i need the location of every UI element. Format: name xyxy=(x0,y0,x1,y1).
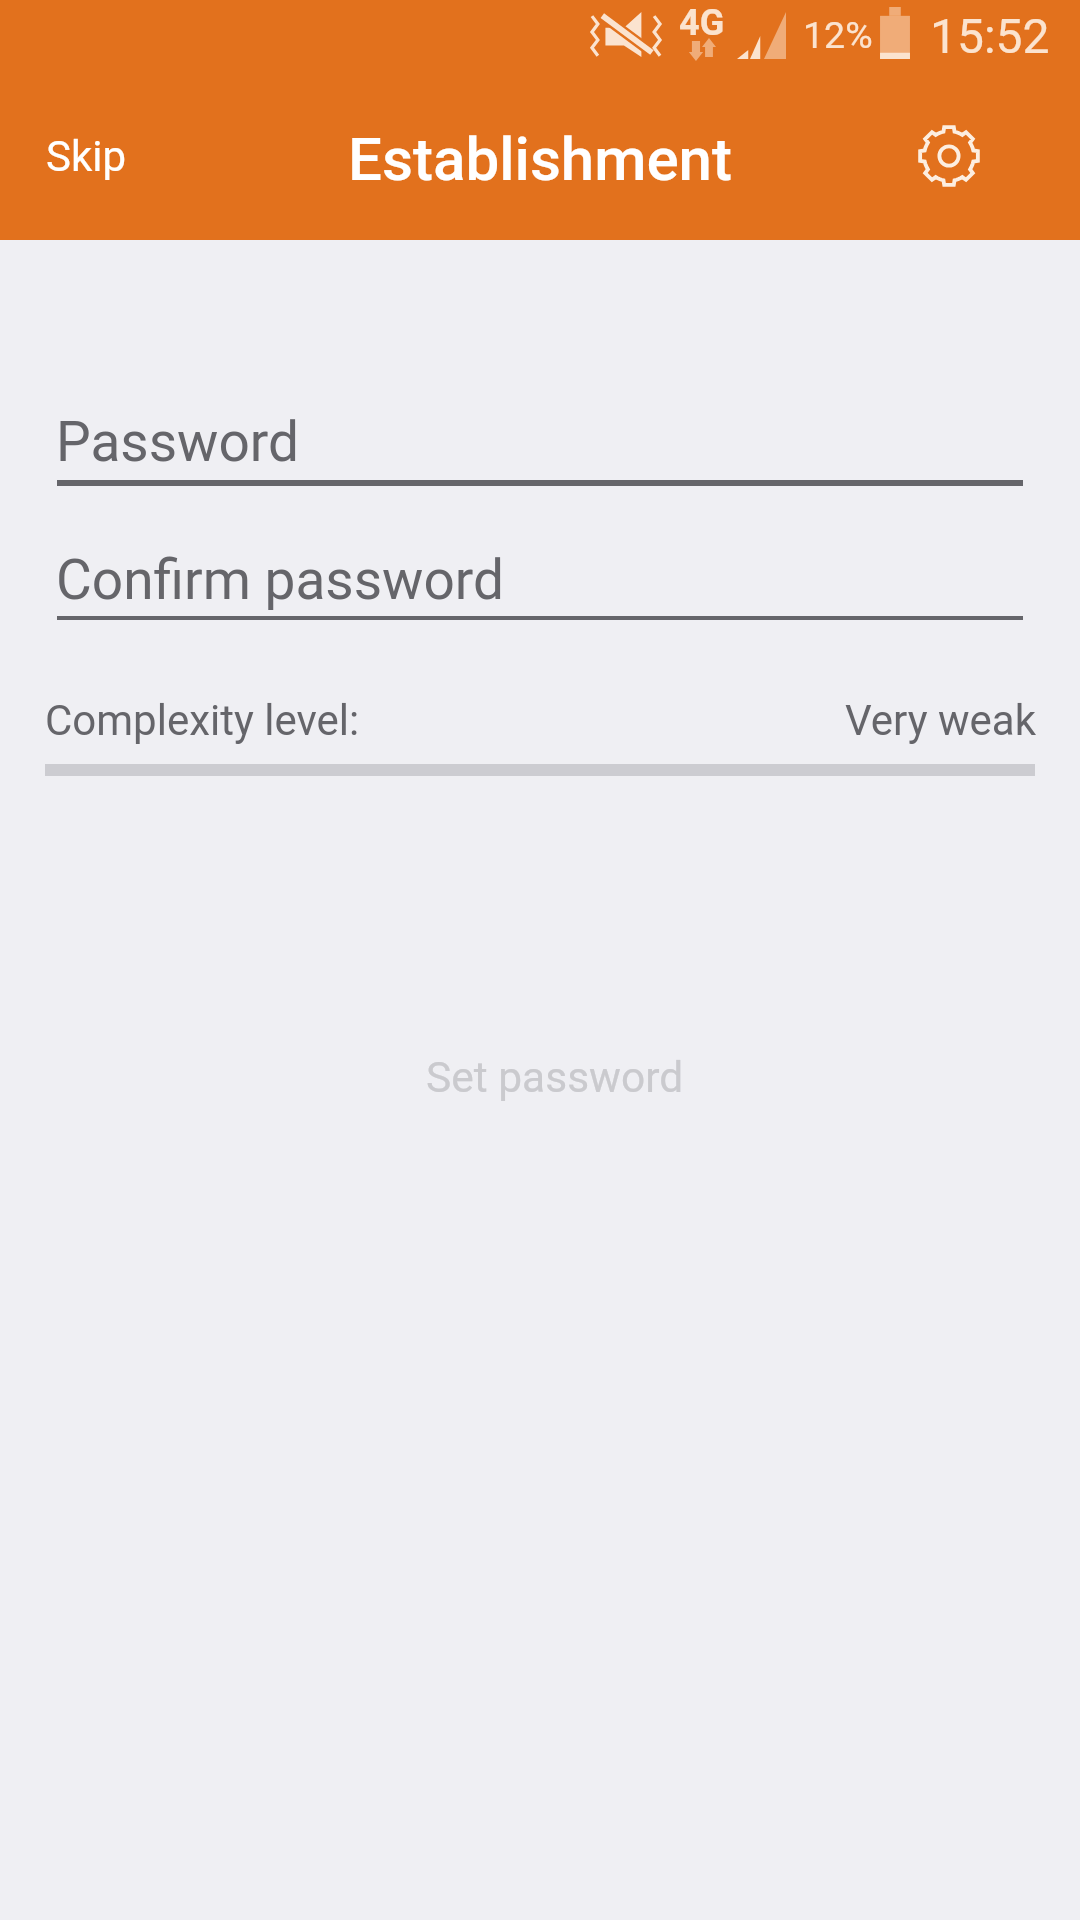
staticText: 15:52 xyxy=(930,8,1050,64)
button[interactable]: Confirm password xyxy=(57,538,1023,620)
staticText: Password xyxy=(56,410,299,474)
button[interactable]: Skip xyxy=(18,112,155,201)
staticText: 12% xyxy=(803,13,873,57)
staticText: Very weak xyxy=(845,696,1036,745)
staticText: Establishment xyxy=(348,124,732,194)
button[interactable]: Settings xyxy=(897,104,1001,208)
button[interactable]: Password xyxy=(57,400,1023,486)
staticText: Skip xyxy=(46,132,127,181)
staticText: 4G xyxy=(679,2,725,44)
button[interactable]: Set password xyxy=(0,1015,1080,1141)
staticText: Set password xyxy=(426,1053,684,1103)
staticText: Confirm password xyxy=(56,548,504,612)
staticText: Complexity level: xyxy=(45,696,360,745)
